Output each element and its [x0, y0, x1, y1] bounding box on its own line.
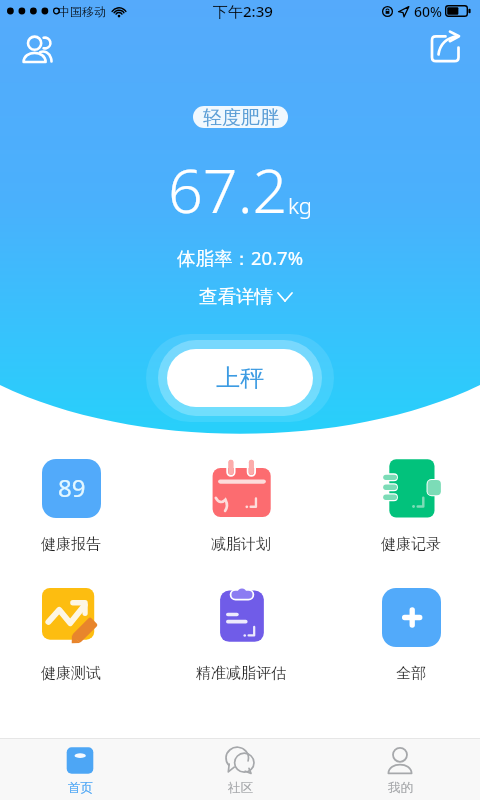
button[interactable]: 精准减脂评估 [166, 584, 316, 683]
button[interactable]: 首页 [0, 739, 160, 800]
staticText: 精准减脂评估 [196, 664, 286, 683]
button[interactable]: 查看详情 [185, 283, 296, 310]
staticText: 中国移动 [58, 4, 106, 19]
staticText: 社区 [228, 780, 253, 796]
staticText: 首页 [68, 780, 93, 796]
staticText: 健康报告 [41, 535, 101, 554]
staticText: 我的 [388, 780, 413, 796]
button[interactable]: Friends [15, 26, 60, 69]
button[interactable]: 社区 [160, 739, 320, 800]
button[interactable]: 全部 [336, 584, 480, 683]
button[interactable]: 健康测试 [0, 584, 146, 683]
staticText: 89 [58, 471, 86, 504]
staticText: 轻度肥胖 [203, 106, 279, 128]
button[interactable]: 89 [0, 455, 146, 554]
button[interactable]: 上秤 [167, 349, 313, 407]
staticText: 查看详情 [199, 285, 273, 308]
staticText: 体脂率：20.7% [177, 245, 304, 270]
button[interactable]: 我的 [320, 739, 480, 800]
staticText: 下午2:39 [213, 1, 273, 21]
button[interactable]: 轻度肥胖 [193, 106, 288, 128]
staticText: 全部 [396, 664, 426, 683]
staticText: 健康记录 [381, 535, 441, 554]
staticText: 上秤 [216, 363, 264, 393]
staticText: 60% [414, 2, 442, 21]
staticText: 减脂计划 [211, 535, 271, 554]
staticText: 67.2 [168, 148, 288, 231]
staticText: kg [288, 190, 313, 220]
button[interactable]: 健康记录 [336, 455, 480, 554]
staticText: 健康测试 [41, 664, 101, 683]
button[interactable]: 减脂计划 [166, 455, 316, 554]
button[interactable]: Share [428, 30, 464, 66]
